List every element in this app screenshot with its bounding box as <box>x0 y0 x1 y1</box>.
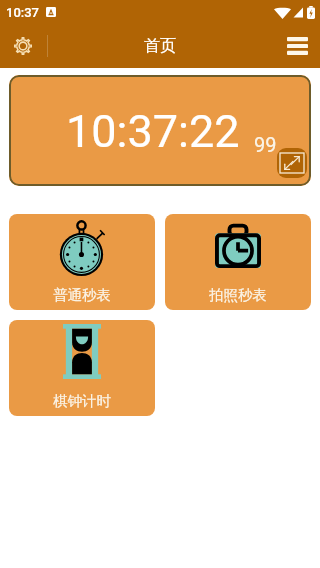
button[interactable]: 拍照秒表 <box>165 214 311 310</box>
staticText: 10:37 <box>6 5 39 20</box>
button[interactable]: 10:37:22 <box>9 75 311 186</box>
staticText: 拍照秒表 <box>209 286 267 304</box>
staticText: 10:37:22 <box>66 105 240 158</box>
staticText: 99 <box>254 133 277 156</box>
button[interactable]: 普通秒表 <box>9 214 155 310</box>
button[interactable]: Menu <box>282 31 312 61</box>
staticText: 首页 <box>144 36 176 56</box>
staticText: 普通秒表 <box>53 286 111 304</box>
staticText: 棋钟计时 <box>53 392 111 410</box>
button[interactable]: Settings <box>8 31 38 61</box>
button[interactable]: 棋钟计时 <box>9 320 155 416</box>
button[interactable]: Fullscreen <box>277 148 307 178</box>
